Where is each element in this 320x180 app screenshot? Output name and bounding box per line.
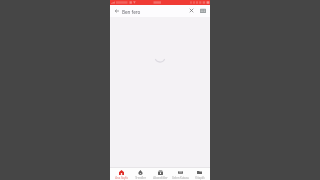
button[interactable]: Trendler bbox=[131, 168, 150, 180]
button[interactable]: Back bbox=[112, 6, 121, 15]
button[interactable]: Ana Sayfa bbox=[112, 168, 131, 180]
staticText: Abonelikler bbox=[153, 176, 168, 180]
button[interactable]: Gelen Kutusu bbox=[171, 168, 190, 180]
button[interactable]: Abonelikler bbox=[151, 168, 170, 180]
staticText: Kitaplık bbox=[195, 176, 205, 180]
staticText: Ben fero bbox=[122, 9, 141, 15]
staticText: Trendler bbox=[135, 176, 146, 180]
button[interactable]: Keyboard bbox=[198, 6, 207, 15]
staticText: Ana Sayfa bbox=[115, 176, 128, 180]
button[interactable]: Kitaplık bbox=[190, 168, 209, 180]
staticText: Gelen Kutusu bbox=[172, 176, 189, 180]
button[interactable]: Clear search bbox=[187, 6, 196, 15]
